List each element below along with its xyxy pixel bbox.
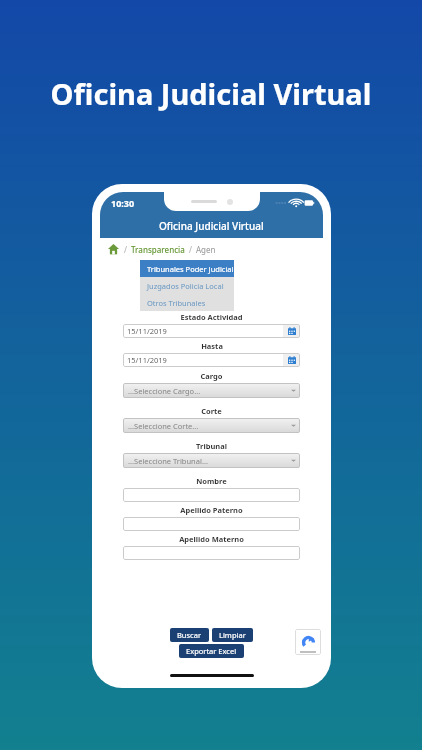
button[interactable]: Abrir calendario [283, 324, 300, 338]
staticText: 15/11/2019 [127, 355, 283, 365]
staticText: / [189, 244, 192, 255]
staticText: Tribunales Poder Judicial [147, 264, 234, 274]
other: Inicio [108, 244, 119, 255]
staticText: ...Seleccione Corte... [128, 421, 287, 431]
staticText: Estado Actividad [180, 312, 243, 322]
staticText: Transparencia [131, 244, 185, 255]
button[interactable]: Otros Tribunales [140, 294, 234, 311]
staticText: Juzgados Policía Local [147, 281, 224, 291]
button[interactable] [123, 488, 300, 502]
staticText: Tribunal [196, 441, 227, 451]
staticText: Oficina Judicial Virtual [159, 219, 264, 233]
staticText: Oficina Judicial Virtual [0, 74, 422, 113]
staticText: Buscar [177, 630, 202, 640]
staticText: Cargo [200, 371, 223, 381]
staticText: ...Seleccione Cargo... [128, 386, 287, 396]
button[interactable]: Buscar [170, 628, 209, 642]
button[interactable]: reCAPTCHA [295, 629, 321, 655]
button[interactable] [123, 517, 300, 531]
staticText: ...Seleccione Tribunal... [128, 456, 287, 466]
button[interactable]: Limpiar [212, 628, 253, 642]
button[interactable]: ...Seleccione Corte... [123, 418, 300, 433]
staticText: Hasta [201, 341, 223, 351]
staticText: Apellido Materno [179, 534, 244, 544]
button[interactable]: Juzgados Policía Local [140, 277, 234, 294]
staticText: Agen [196, 244, 216, 255]
staticText: Corte [201, 406, 222, 416]
staticText: Nombre [196, 476, 227, 486]
staticText: 15/11/2019 [127, 326, 283, 336]
button[interactable]: ...Seleccione Tribunal... [123, 453, 300, 468]
button[interactable]: Abrir calendario [283, 353, 300, 367]
button[interactable]: Exportar Excel [179, 644, 244, 658]
button[interactable]: ...Seleccione Cargo... [123, 383, 300, 398]
staticText: Exportar Excel [186, 646, 237, 656]
staticText: 10:30 [111, 197, 135, 209]
button[interactable]: 15/11/2019 [123, 353, 300, 367]
staticText: Limpiar [219, 630, 246, 640]
button[interactable] [123, 546, 300, 560]
staticText: Apellido Paterno [180, 505, 243, 515]
button[interactable]: Transparencia [131, 244, 185, 255]
staticText: / [124, 244, 127, 255]
button[interactable]: 15/11/2019 [123, 324, 300, 338]
button[interactable]: Tribunales Poder Judicial [140, 260, 234, 277]
staticText: Otros Tribunales [147, 298, 206, 308]
